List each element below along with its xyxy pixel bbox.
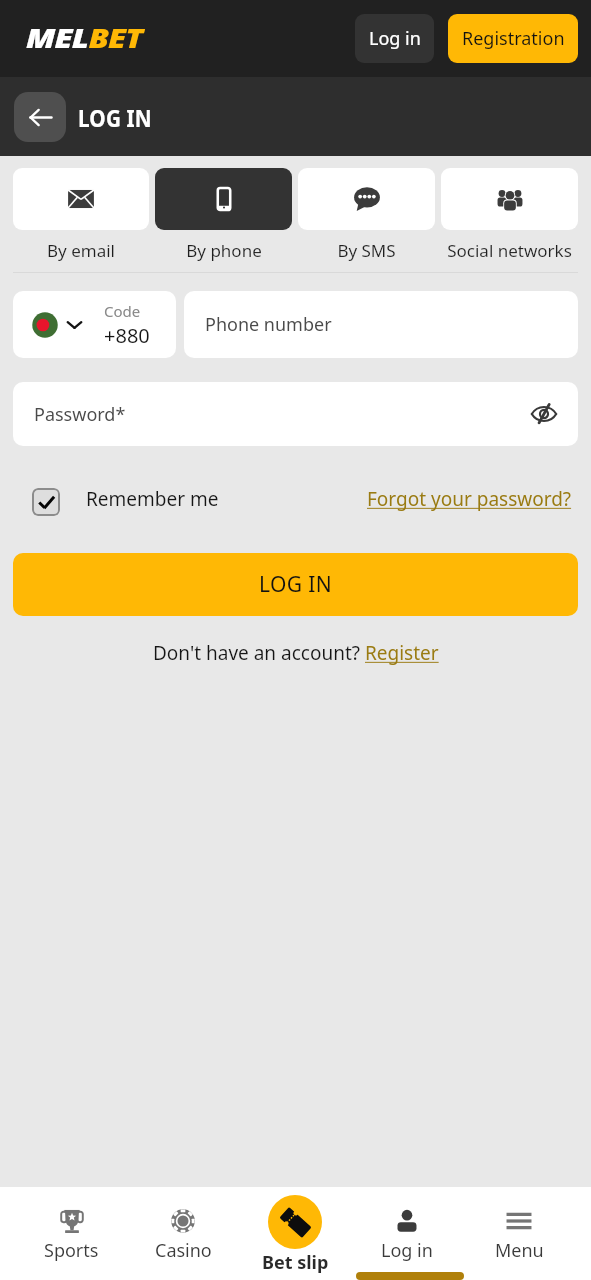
staticText: Forgot your password?	[367, 486, 572, 512]
button[interactable]: Show password	[527, 397, 561, 431]
button[interactable]: By SMS	[298, 168, 435, 262]
button[interactable]: Code	[13, 291, 176, 358]
staticText: Code	[104, 301, 141, 321]
staticText: By SMS	[337, 239, 396, 262]
staticText: LOG IN	[259, 570, 333, 599]
staticText: By email	[47, 239, 115, 262]
button[interactable]: Log in	[351, 1187, 463, 1263]
button[interactable]: Social networks	[441, 168, 578, 262]
staticText: Phone number	[205, 312, 332, 337]
staticText: Social networks	[447, 239, 572, 262]
staticText: Register	[365, 640, 439, 666]
button[interactable]: Menu	[463, 1187, 575, 1263]
staticText: +880	[104, 322, 150, 349]
staticText: Remember me	[86, 486, 219, 512]
button[interactable]: Remember me	[32, 485, 219, 513]
staticText: Log in	[381, 1238, 433, 1263]
button[interactable]: By email	[13, 168, 149, 262]
staticText: Menu	[495, 1238, 544, 1263]
button[interactable]: Registration	[448, 14, 578, 63]
staticText: By phone	[186, 239, 262, 262]
staticText: LOG IN	[78, 102, 153, 133]
staticText: BET	[88, 19, 142, 56]
button[interactable]: Bet slip	[239, 1187, 351, 1275]
staticText: Don't have an account?	[153, 640, 365, 666]
button[interactable]: Phone number	[184, 291, 578, 358]
button[interactable]: LOG IN	[13, 553, 578, 616]
staticText: Password*	[34, 402, 126, 427]
staticText: MEL	[26, 19, 88, 56]
button[interactable]: Forgot your password?	[367, 486, 572, 512]
staticText: Log in	[369, 26, 421, 51]
button[interactable]: Casino	[127, 1187, 239, 1263]
staticText: Sports	[44, 1238, 99, 1263]
button[interactable]: Log in	[355, 14, 434, 63]
button[interactable]: Register	[365, 640, 439, 666]
staticText: Casino	[155, 1238, 212, 1263]
staticText: Bet slip	[262, 1250, 329, 1275]
button[interactable]: By phone	[155, 168, 292, 262]
button[interactable]: Back	[14, 92, 66, 142]
staticText: Registration	[462, 26, 565, 51]
button[interactable]: Sports	[16, 1187, 127, 1263]
button[interactable]: Password*	[13, 382, 578, 446]
